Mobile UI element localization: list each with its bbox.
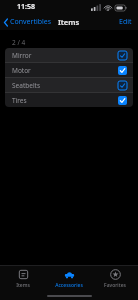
button[interactable]: Motor — [5, 63, 133, 77]
staticText: Edit — [119, 17, 132, 27]
button[interactable]: Items — [0, 266, 46, 292]
staticText: Accessories — [55, 282, 83, 289]
staticText: Items — [16, 282, 30, 289]
button[interactable]: Checked — [118, 96, 127, 105]
button[interactable]: Accessories — [46, 266, 92, 292]
button[interactable]: Checked — [118, 66, 127, 75]
staticText: 2 / 4 — [12, 38, 26, 47]
button[interactable]: Edit — [113, 15, 138, 29]
staticText: Tires — [12, 96, 118, 105]
button[interactable]: Favorites — [92, 266, 138, 292]
staticText: 11:58 — [17, 2, 35, 12]
staticText: Seatbelts — [12, 81, 118, 90]
button[interactable]: Unchecked — [118, 81, 127, 90]
staticText: Items — [58, 17, 80, 27]
button[interactable]: Seatbelts — [5, 78, 133, 92]
button[interactable]: Unchecked — [118, 51, 127, 60]
staticText: Favorites — [104, 282, 126, 289]
staticText: Mirror — [12, 51, 118, 60]
button[interactable]: Mirror — [5, 48, 133, 62]
button[interactable]: Convertibles — [0, 15, 58, 29]
staticText: Motor — [12, 66, 118, 75]
button[interactable]: Tires — [5, 93, 133, 107]
staticText: Convertibles — [10, 17, 52, 27]
